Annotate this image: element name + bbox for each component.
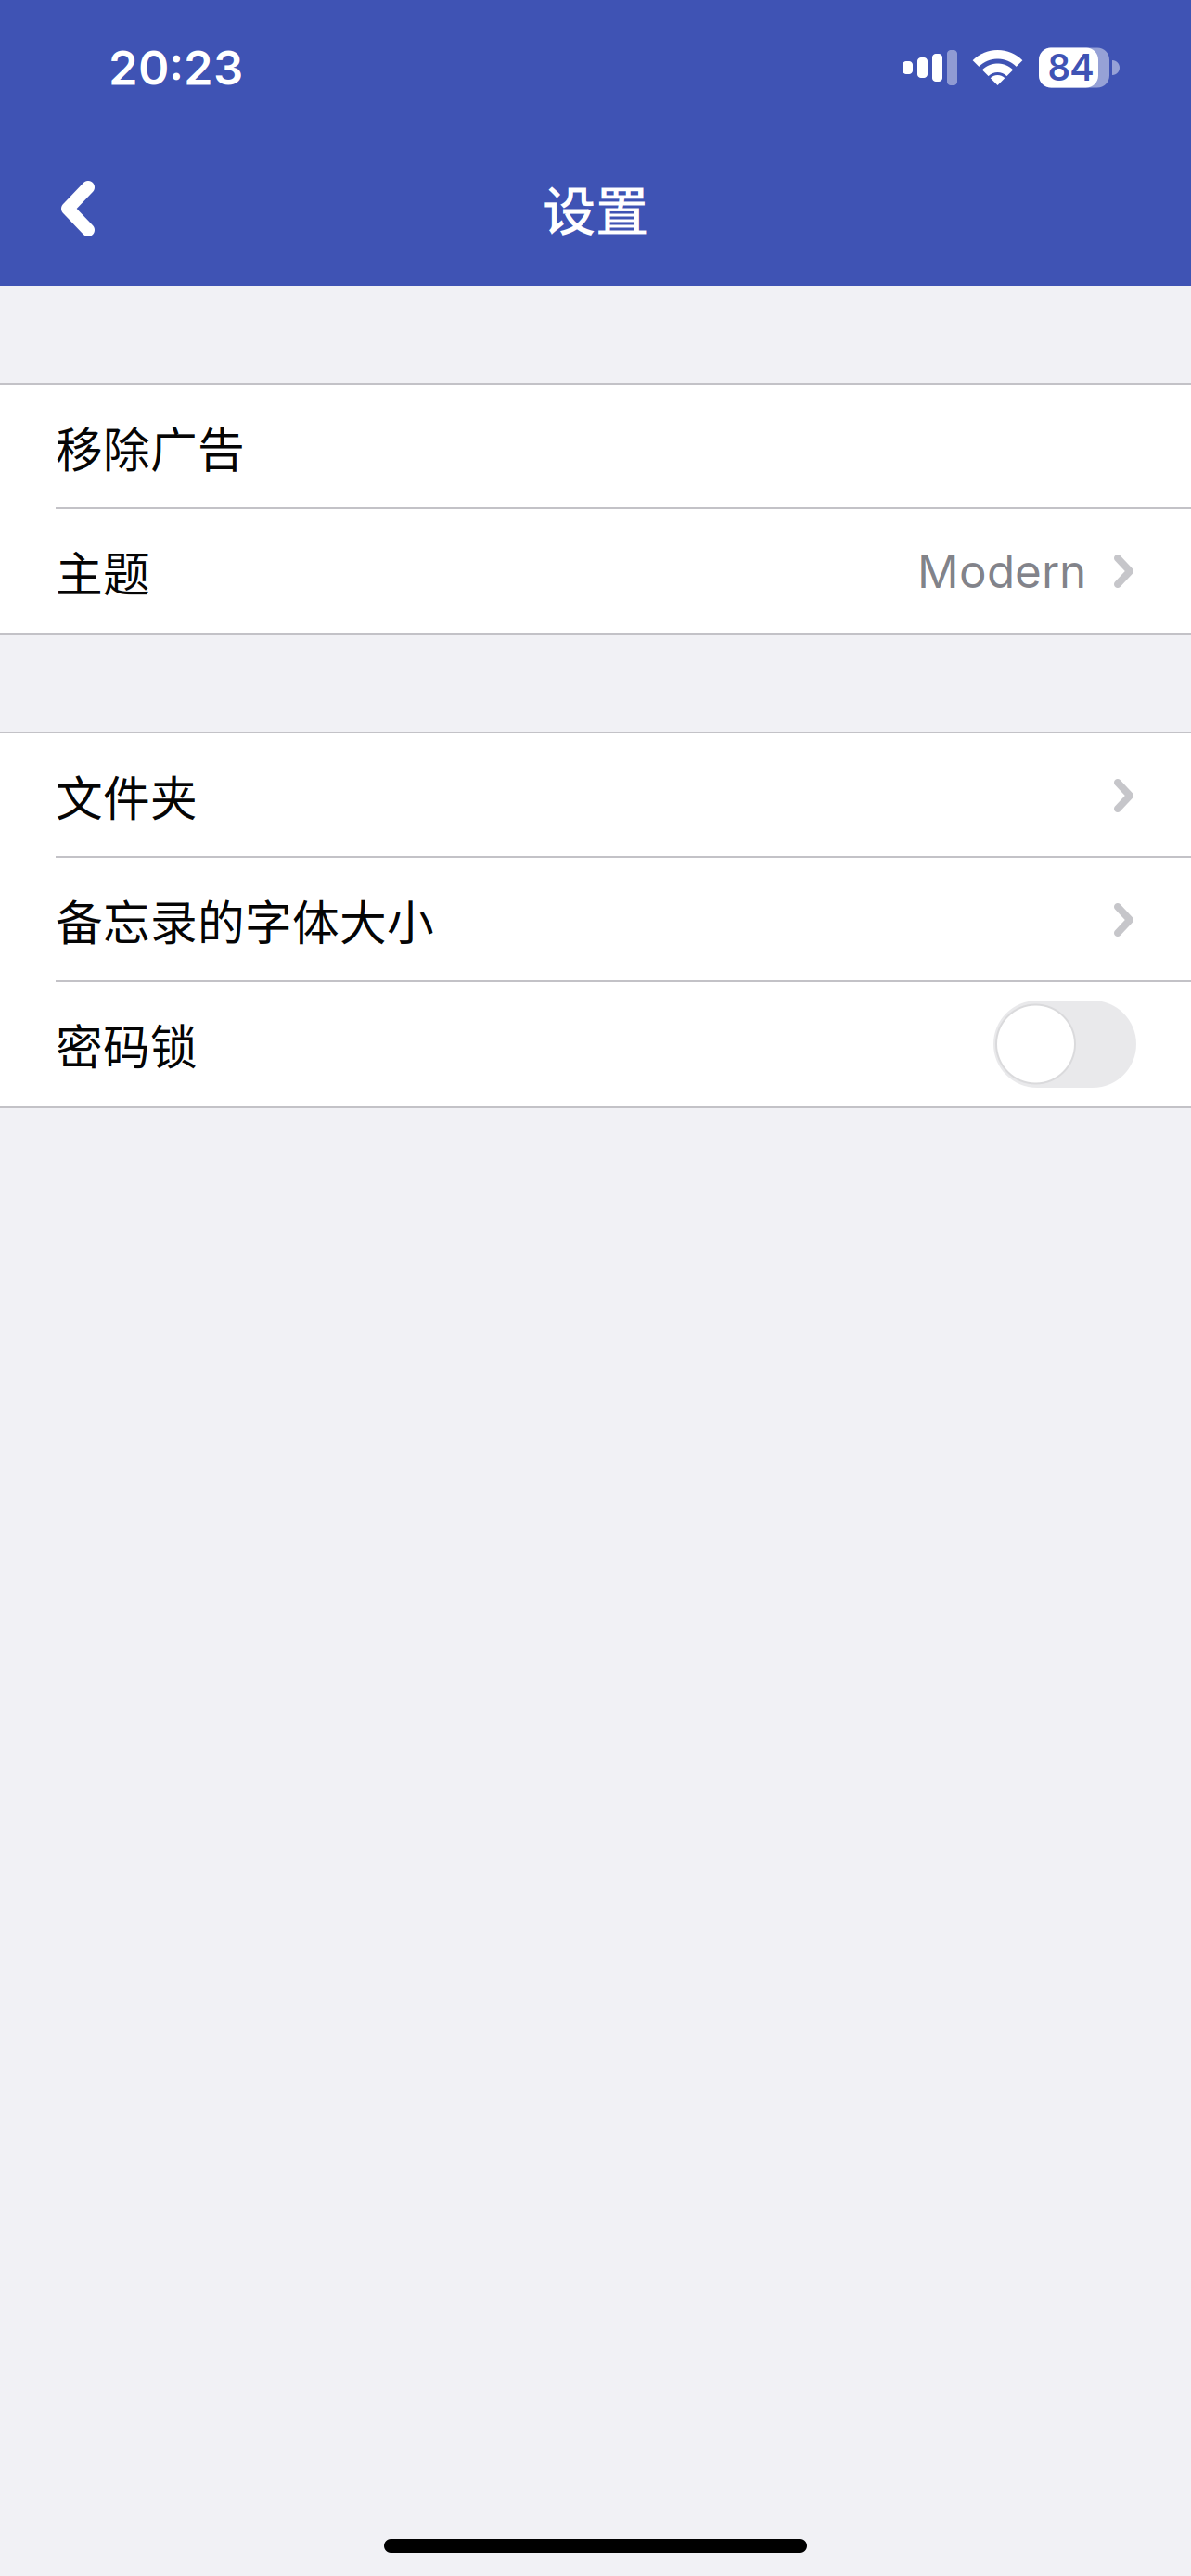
- staticText: 移除广告: [56, 413, 245, 481]
- button[interactable]: 主题: [0, 509, 1191, 633]
- staticText: 备忘录的字体大小: [56, 886, 434, 954]
- staticText: Modern: [917, 544, 1086, 599]
- button[interactable]: 文件夹: [0, 733, 1191, 858]
- button[interactable]: Back: [0, 122, 173, 286]
- button[interactable]: 备忘录的字体大小: [0, 858, 1191, 982]
- staticText: 20:23: [109, 39, 243, 96]
- staticText: 84: [1048, 46, 1094, 89]
- staticText: 文件夹: [56, 762, 198, 830]
- staticText: 设置: [543, 169, 648, 246]
- staticText: 密码锁: [56, 1010, 198, 1078]
- staticText: 主题: [56, 537, 150, 605]
- button[interactable]: 移除广告: [0, 385, 1191, 509]
- button[interactable]: 密码锁: [0, 982, 1191, 1106]
